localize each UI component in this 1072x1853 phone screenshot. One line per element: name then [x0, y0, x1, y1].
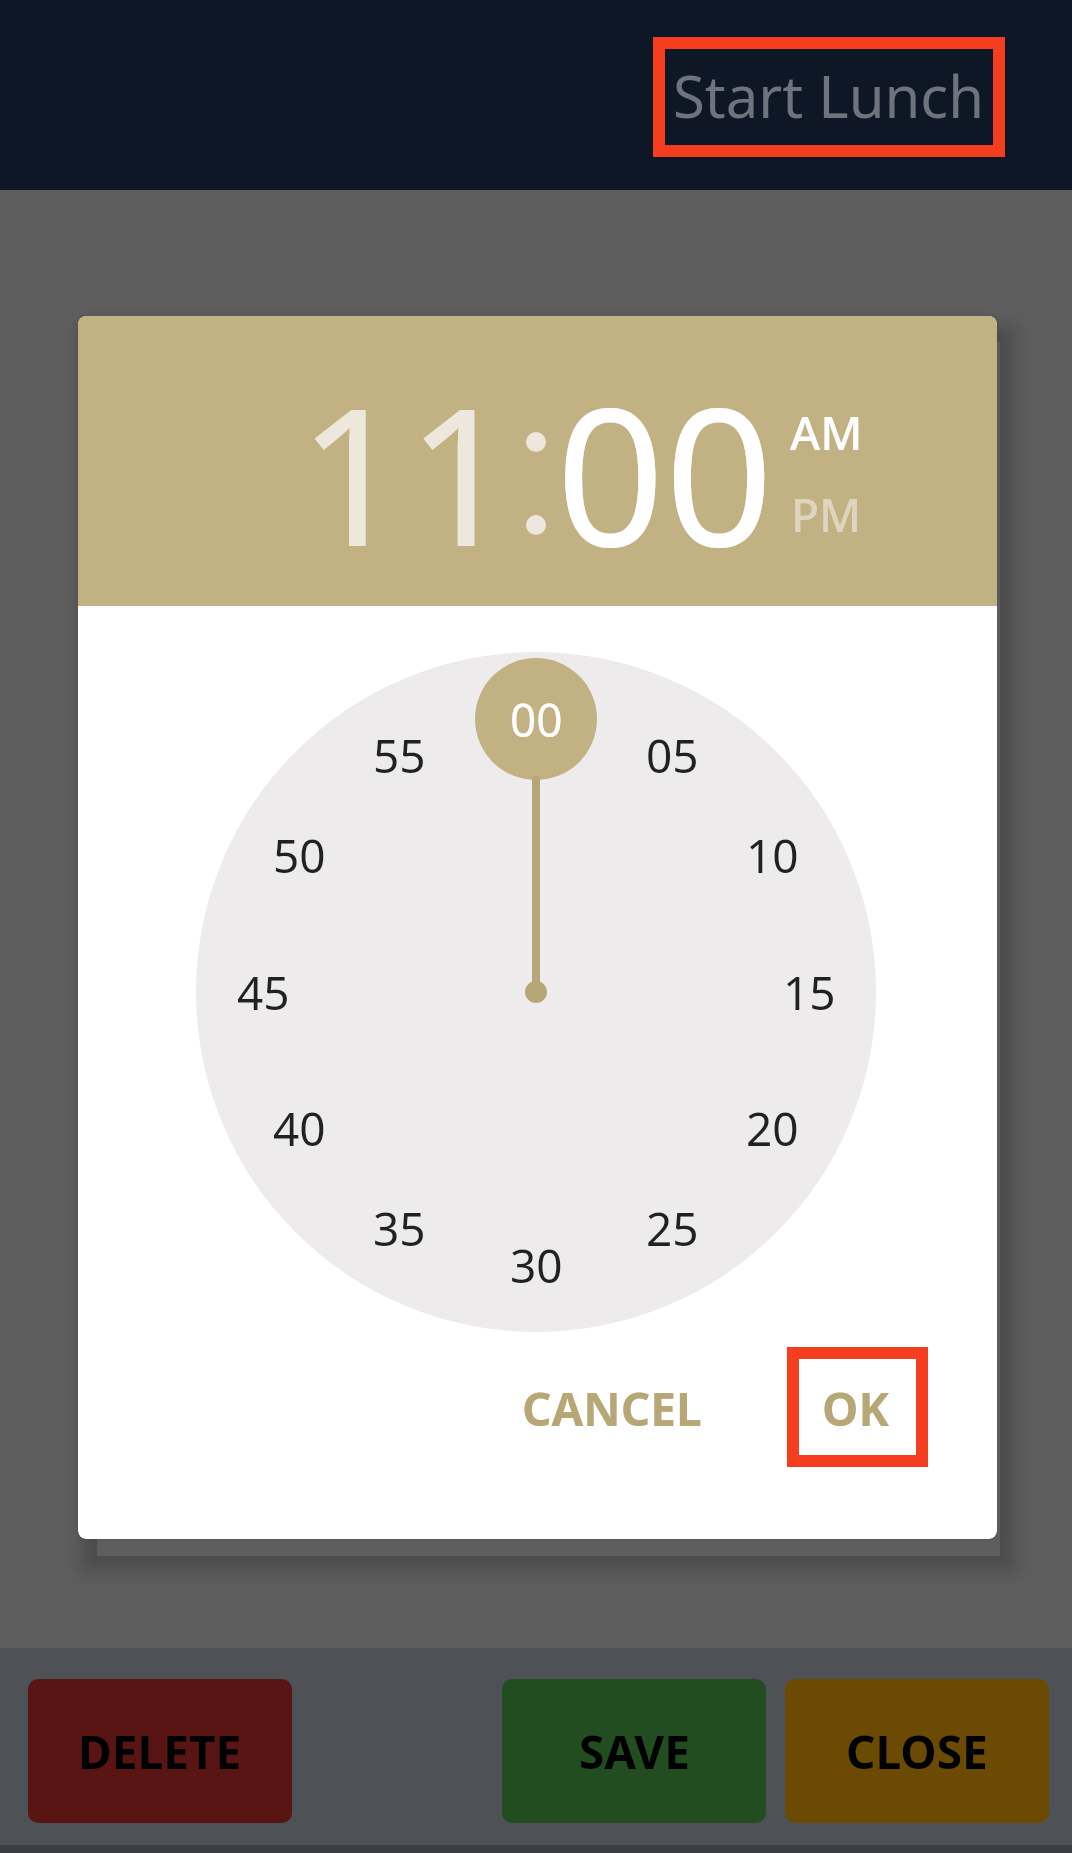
staticText: 15	[783, 961, 836, 1024]
staticText: 40	[273, 1097, 326, 1160]
button[interactable]: 45	[203, 932, 323, 1052]
staticText: OK	[822, 1377, 889, 1440]
button[interactable]: CANCEL	[492, 1353, 732, 1463]
button[interactable]: 40	[239, 1068, 359, 1188]
button[interactable]: 30	[476, 1205, 596, 1325]
button[interactable]: AM	[746, 397, 906, 467]
staticText: 25	[646, 1197, 699, 1260]
button[interactable]: 35	[339, 1168, 459, 1288]
button[interactable]: SAVE	[502, 1679, 766, 1823]
staticText: 30	[510, 1234, 563, 1297]
button[interactable]: 55	[339, 695, 459, 815]
staticText: 11	[298, 343, 516, 602]
staticText: DELETE	[78, 1720, 242, 1783]
button[interactable]: 50	[239, 795, 359, 915]
staticText: CANCEL	[522, 1377, 702, 1440]
button[interactable]: 20	[712, 1068, 832, 1188]
button[interactable]: 00	[455, 327, 875, 617]
staticText: 20	[746, 1097, 799, 1160]
button[interactable]: DELETE	[28, 1679, 292, 1823]
button[interactable]: Start Lunch	[653, 35, 1005, 155]
staticText: 05	[646, 724, 699, 787]
staticText: 55	[373, 724, 426, 787]
staticText: AM	[790, 401, 863, 464]
button[interactable]: 00	[476, 659, 596, 779]
button[interactable]: PM	[746, 479, 906, 549]
button[interactable]: 05	[612, 695, 732, 815]
button[interactable]: OK	[780, 1353, 930, 1463]
button[interactable]: 11	[197, 327, 617, 617]
staticText: Start Lunch	[673, 56, 985, 135]
button[interactable]: 10	[712, 795, 832, 915]
button[interactable]: 15	[749, 932, 869, 1052]
button[interactable]: 25	[612, 1168, 732, 1288]
staticText: 50	[273, 824, 326, 887]
staticText: 10	[746, 824, 799, 887]
staticText: CLOSE	[846, 1720, 988, 1783]
staticText: 00	[510, 688, 563, 751]
staticText: 45	[237, 961, 290, 1024]
button[interactable]: CLOSE	[785, 1679, 1049, 1823]
staticText: 35	[373, 1197, 426, 1260]
staticText: 00	[556, 343, 774, 602]
staticText: SAVE	[579, 1720, 690, 1783]
staticText: PM	[791, 483, 862, 546]
